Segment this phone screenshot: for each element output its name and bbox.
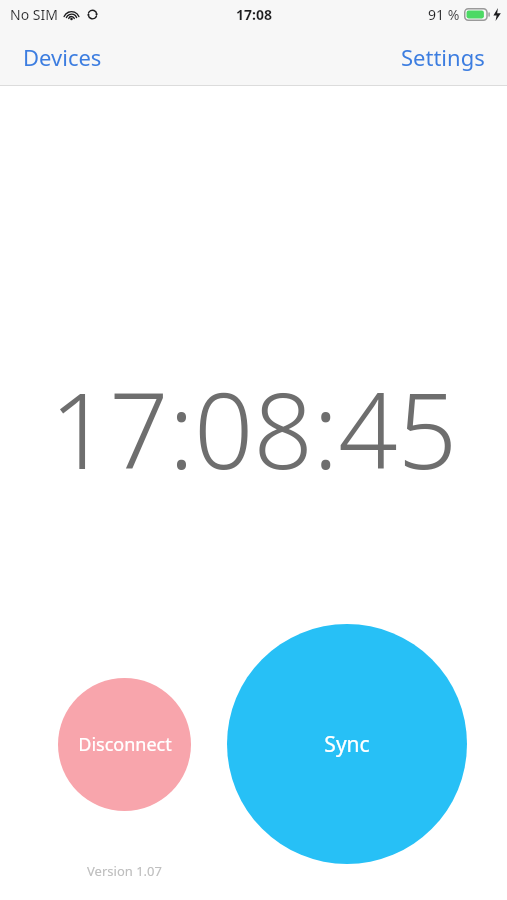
button[interactable]: Sync: [227, 624, 467, 864]
staticText: Disconnect: [78, 732, 172, 757]
staticText: Settings: [401, 42, 485, 72]
button[interactable]: Disconnect: [58, 678, 191, 811]
staticText: Devices: [23, 42, 102, 72]
staticText: Version 1.07: [87, 862, 162, 880]
button[interactable]: Settings: [379, 32, 507, 82]
staticText: No SIM: [10, 5, 58, 24]
staticText: 17:08: [236, 5, 272, 24]
staticText: Sync: [324, 730, 370, 759]
button[interactable]: Devices: [0, 32, 125, 82]
staticText: 17:08:45: [0, 358, 507, 500]
staticText: 91 %: [428, 5, 460, 24]
